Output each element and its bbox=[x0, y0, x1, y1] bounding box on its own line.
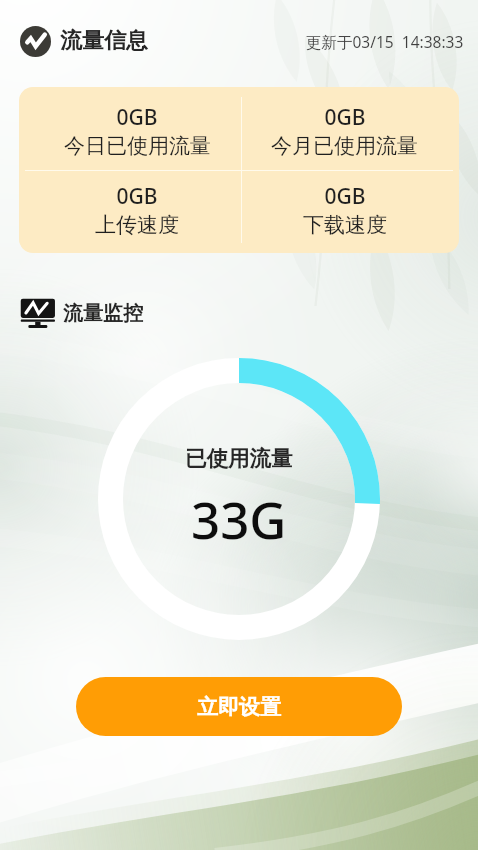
staticText: 更新于03/15 14:38:33 bbox=[306, 31, 464, 52]
button[interactable]: 0GB bbox=[35, 171, 239, 253]
staticText: 下载速度 bbox=[303, 212, 387, 238]
staticText: 0GB bbox=[324, 103, 366, 132]
staticText: 立即设置 bbox=[197, 694, 281, 720]
button[interactable]: 流量监控 bbox=[20, 297, 478, 329]
staticText: 流量监控 bbox=[63, 301, 143, 326]
button[interactable]: 流量信息图标 bbox=[20, 21, 148, 61]
staticText: 已使用流量 bbox=[185, 445, 293, 472]
staticText: 0GB bbox=[116, 182, 158, 211]
other: 流量信息图标 bbox=[20, 26, 51, 57]
button[interactable]: 0GB bbox=[35, 87, 239, 170]
staticText: 0GB bbox=[116, 103, 158, 132]
staticText: 今日已使用流量 bbox=[64, 133, 211, 159]
button[interactable]: 立即设置 bbox=[76, 677, 402, 736]
staticText: 今月已使用流量 bbox=[271, 133, 418, 159]
button[interactable]: 0GB bbox=[239, 171, 450, 253]
staticText: 33G bbox=[191, 484, 287, 553]
staticText: 0GB bbox=[324, 182, 366, 211]
staticText: 流量信息 bbox=[60, 27, 148, 55]
staticText: 上传速度 bbox=[95, 212, 179, 238]
button[interactable]: 0GB bbox=[239, 87, 450, 170]
